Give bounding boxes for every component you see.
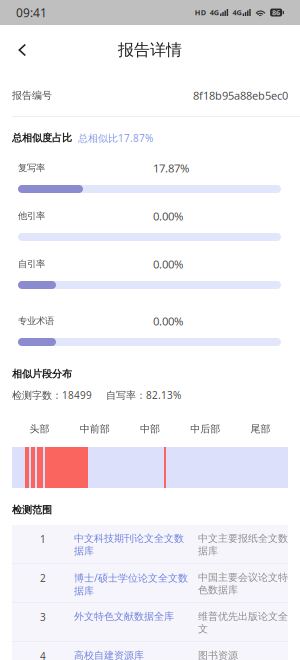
staticText: 中文主要报纸全文数据库 bbox=[198, 532, 288, 557]
staticText: 2 bbox=[40, 571, 46, 585]
staticText: 中后部 bbox=[190, 423, 220, 435]
staticText: 中国主要会议论文特色数据库 bbox=[198, 571, 288, 596]
staticText: 自引率 bbox=[18, 258, 45, 270]
staticText: 总相似比17.87% bbox=[78, 131, 153, 145]
staticText: 相似片段分布 bbox=[12, 368, 72, 380]
staticText: 0.00% bbox=[153, 313, 183, 329]
staticText: 报告详情 bbox=[118, 40, 182, 60]
staticText: 专业术语 bbox=[18, 315, 54, 327]
staticText: 自写率：82.13% bbox=[106, 388, 181, 402]
staticText: 3 bbox=[40, 610, 46, 624]
staticText: 8f18b95a88eb5ec0 bbox=[193, 88, 288, 103]
staticText: 检测范围 bbox=[12, 504, 52, 516]
staticText: 中文科技期刊论文全文数据库 bbox=[74, 532, 184, 557]
staticText: HD bbox=[195, 7, 206, 17]
staticText: 图书资源 bbox=[198, 649, 238, 660]
staticText: 09:41 bbox=[16, 4, 47, 21]
staticText: 他引率 bbox=[18, 210, 45, 222]
staticText: 博士/硕士学位论文全文数据库 bbox=[74, 571, 188, 597]
staticText: 高校自建资源库 bbox=[74, 649, 144, 660]
staticText: 维普优先出版论文全文 bbox=[198, 610, 288, 635]
staticText: 复写率 bbox=[18, 162, 45, 174]
staticText: 0.00% bbox=[153, 256, 183, 272]
staticText: 中部 bbox=[140, 423, 160, 435]
staticText: 4 bbox=[40, 649, 46, 660]
staticText: 17.87% bbox=[153, 160, 189, 176]
staticText: 头部 bbox=[30, 423, 50, 435]
staticText: 检测字数：18499 bbox=[12, 388, 92, 402]
staticText: 1 bbox=[40, 532, 46, 546]
staticText: 报告编号 bbox=[12, 89, 52, 102]
staticText: 外文特色文献数据全库 bbox=[74, 610, 174, 623]
button[interactable]: Back bbox=[0, 28, 44, 72]
staticText: 86 bbox=[272, 7, 280, 17]
staticText: 0.00% bbox=[153, 208, 183, 224]
staticText: 4G bbox=[210, 7, 219, 17]
staticText: 尾部 bbox=[250, 423, 270, 435]
staticText: 中前部 bbox=[80, 423, 110, 435]
staticText: 4G bbox=[232, 7, 241, 17]
staticText: 总相似度占比 bbox=[12, 132, 72, 144]
